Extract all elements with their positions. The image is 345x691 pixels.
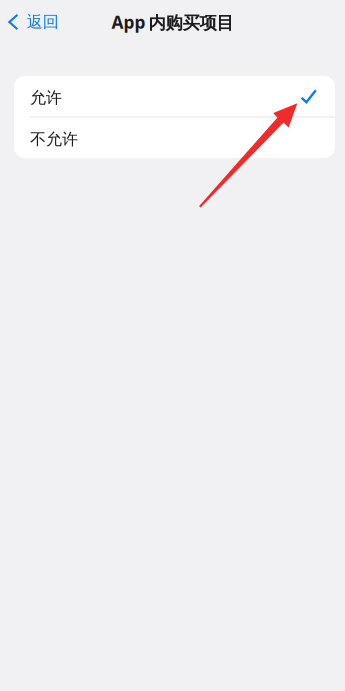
staticText: 允许 bbox=[30, 88, 62, 108]
button[interactable]: 允许 bbox=[14, 76, 335, 116]
button[interactable]: 返回 bbox=[0, 0, 80, 44]
button[interactable]: 不允许 bbox=[14, 117, 335, 158]
staticText: 返回 bbox=[27, 12, 59, 32]
staticText: 不允许 bbox=[30, 129, 78, 149]
staticText: App 内购买项目 bbox=[111, 10, 233, 33]
